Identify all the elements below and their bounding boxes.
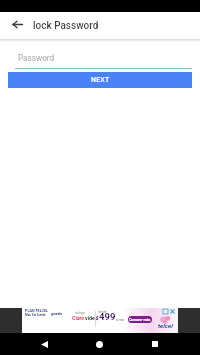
staticText: video	[85, 315, 98, 321]
button[interactable]: Back	[34, 334, 54, 354]
staticText: gratis	[51, 311, 63, 316]
button[interactable]: Conocer más	[128, 316, 152, 323]
staticText: incluye	[75, 311, 85, 315]
staticText: PLAN TELCEL	[25, 309, 49, 313]
button[interactable]: Recent apps	[145, 334, 165, 354]
staticText: telcel	[158, 322, 173, 329]
staticText: al mes	[116, 318, 125, 321]
staticText: lock Password	[33, 20, 99, 32]
button[interactable]: Advertisement	[22, 308, 178, 333]
staticText: Mas Sin Limite	[25, 313, 46, 317]
button[interactable]: Home	[89, 334, 109, 354]
staticText: $	[96, 316, 99, 321]
staticText: NEXT	[91, 76, 110, 84]
staticText: desde	[98, 310, 107, 314]
staticText: 499	[99, 311, 116, 322]
staticText: Claro	[72, 315, 85, 321]
button[interactable]: NEXT	[8, 72, 192, 88]
staticText: Conocer más	[129, 318, 151, 322]
staticText: Password	[18, 53, 55, 63]
button[interactable]: Navigate up	[7, 14, 27, 34]
